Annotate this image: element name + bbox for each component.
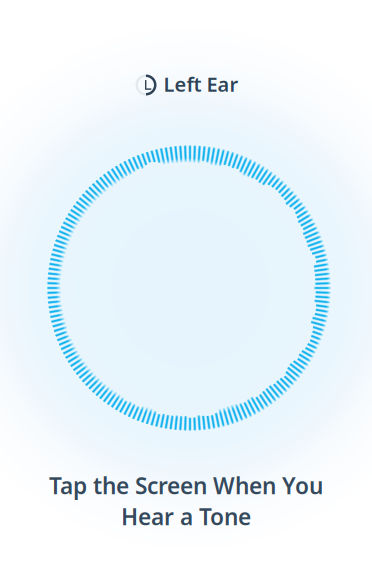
staticText: Hear a Tone <box>121 501 251 532</box>
button[interactable]: Tap the screen when you hear a tone <box>0 0 372 580</box>
button[interactable]: Left Ear <box>135 71 238 97</box>
staticText: Left Ear <box>163 71 238 97</box>
staticText: Tap the Screen When You <box>49 470 323 500</box>
